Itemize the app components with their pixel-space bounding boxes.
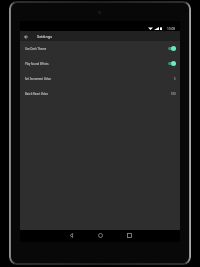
button[interactable]: Back [57, 230, 86, 242]
staticText: Settings [37, 34, 53, 39]
staticText: Use Dark Theme [25, 47, 47, 50]
button[interactable]: Home [86, 230, 115, 242]
button[interactable]: Set Increment Value [20, 71, 180, 86]
staticText: Play Sound Effects [25, 62, 49, 65]
button[interactable]: Recent apps [115, 230, 144, 242]
button[interactable]: Use Dark Theme [20, 41, 180, 56]
button[interactable]: Back [21, 31, 31, 41]
staticText: 100 [171, 92, 176, 96]
staticText: Set Increment Value [25, 77, 51, 80]
button[interactable]: Play Sound Effects [20, 56, 180, 71]
staticText: 10:08 [167, 27, 176, 31]
button[interactable]: Batch Reset Value [20, 86, 180, 101]
staticText: 5 [174, 77, 176, 81]
staticText: Batch Reset Value [25, 92, 48, 95]
